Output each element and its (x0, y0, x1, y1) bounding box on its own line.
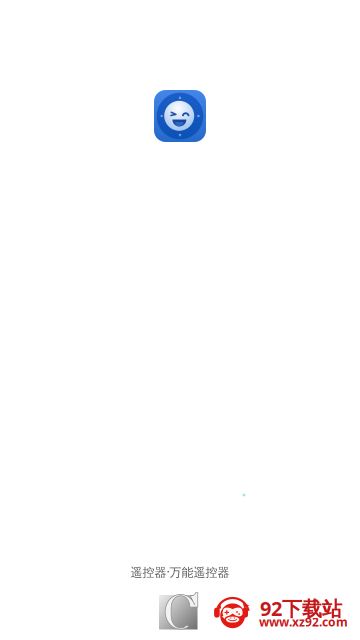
staticText: www.xz92.com (259, 614, 348, 630)
staticText: 遥控器·万能遥控器 (130, 564, 229, 580)
staticText: 92下载站 (260, 595, 342, 622)
button[interactable]: 92下载站 www.xz92.com (159, 590, 360, 638)
button[interactable]: 遥控器·万能遥控器 (154, 90, 206, 142)
